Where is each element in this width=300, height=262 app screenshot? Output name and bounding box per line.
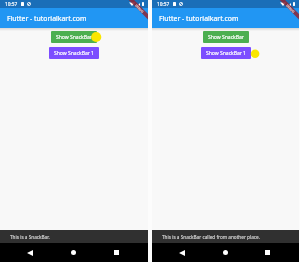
button[interactable]: Show SnackBar 1 xyxy=(201,47,251,59)
button[interactable]: Show SnackBar xyxy=(203,31,249,43)
staticText: Show SnackBar xyxy=(56,34,92,41)
button[interactable]: Home xyxy=(66,243,80,262)
button[interactable]: Back xyxy=(175,243,189,262)
staticText: DEBUG xyxy=(285,4,296,14)
staticText: Flutter - tutorialkart.com xyxy=(7,14,87,23)
staticText: Show SnackBar xyxy=(208,34,244,41)
staticText: Show SnackBar 1 xyxy=(206,50,246,57)
button[interactable]: Recent apps xyxy=(109,243,123,262)
staticText: This is a SnackBar called from another p… xyxy=(162,234,260,240)
button[interactable]: Back xyxy=(23,243,37,262)
staticText: 10:57 xyxy=(5,1,18,8)
staticText: DEBUG xyxy=(134,4,145,14)
staticText: 10:57 xyxy=(157,1,170,8)
button[interactable]: Show SnackBar xyxy=(51,31,97,43)
staticText: This is a SnackBar. xyxy=(10,234,50,240)
staticText: Flutter - tutorialkart.com xyxy=(159,14,239,23)
button[interactable]: Recent apps xyxy=(260,243,274,262)
button[interactable]: Home xyxy=(218,243,232,262)
button[interactable]: Show SnackBar 1 xyxy=(49,47,99,59)
staticText: Show SnackBar 1 xyxy=(54,50,94,57)
